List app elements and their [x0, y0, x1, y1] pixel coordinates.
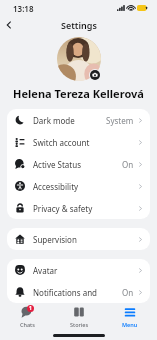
- button[interactable]: Back: [0, 16, 18, 34]
- staticText: System: [106, 115, 134, 126]
- staticText: Privacy & safety: [33, 203, 138, 214]
- staticText: 13:18: [13, 3, 34, 14]
- staticText: Supervision: [33, 234, 138, 245]
- button[interactable]: Menu: [106, 305, 154, 328]
- button[interactable]: Avatar: [7, 259, 150, 281]
- button[interactable]: Change profile photo: [57, 37, 101, 81]
- staticText: Helena Tereza Kellerová: [13, 86, 144, 101]
- button[interactable]: 1: [3, 305, 51, 328]
- button[interactable]: Active Status: [7, 153, 150, 175]
- button[interactable]: Supervision: [7, 228, 150, 250]
- staticText: On: [122, 159, 134, 170]
- button[interactable]: Dark mode: [7, 109, 150, 131]
- staticText: Avatar: [33, 265, 138, 276]
- staticText: 1: [29, 305, 32, 312]
- staticText: Settings: [61, 19, 97, 31]
- button[interactable]: Stories: [55, 305, 103, 328]
- staticText: Notifications and sounds: [33, 287, 122, 298]
- staticText: Menu: [122, 321, 138, 328]
- button[interactable]: Switch account: [7, 131, 150, 153]
- staticText: Switch account: [33, 137, 138, 148]
- staticText: Chats: [20, 321, 35, 328]
- button[interactable]: Privacy & safety: [7, 197, 150, 219]
- staticText: On: [122, 287, 134, 298]
- staticText: Active Status: [33, 159, 122, 170]
- staticText: Stories: [70, 321, 89, 328]
- staticText: Dark mode: [33, 115, 106, 126]
- staticText: Accessibility: [33, 181, 138, 192]
- button[interactable]: Notifications and sounds: [7, 281, 150, 303]
- button[interactable]: Accessibility: [7, 175, 150, 197]
